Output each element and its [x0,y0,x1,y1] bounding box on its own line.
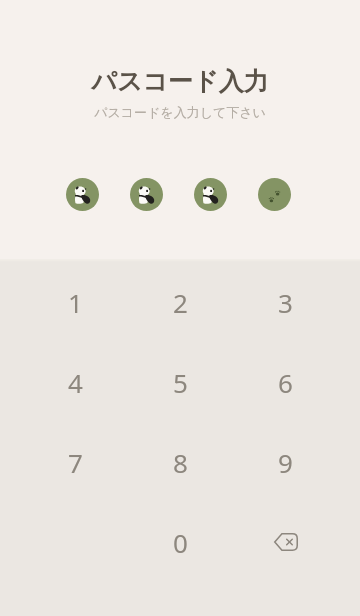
button[interactable]: 5 [128,342,233,422]
staticText: 3 [278,285,293,320]
staticText: 0 [173,525,188,560]
staticText: 4 [68,365,83,400]
button[interactable]: 2 [128,262,233,342]
other: Entered digit [194,178,227,211]
other: Entered digit [130,178,163,211]
button[interactable]: 6 [233,342,338,422]
button[interactable]: 9 [233,422,338,502]
staticText: 8 [173,445,188,480]
other: Entered digit [66,178,99,211]
staticText: パスコードを入力して下さい [94,104,266,120]
staticText: 2 [173,285,188,320]
staticText: 1 [68,285,83,320]
staticText: 6 [278,365,293,400]
button[interactable]: 0 [128,502,233,582]
button[interactable]: 7 [23,422,128,502]
button[interactable]: 1 [23,262,128,342]
staticText: 5 [173,365,188,400]
button[interactable]: 3 [233,262,338,342]
other: Empty digit [258,178,291,211]
staticText: パスコード入力 [91,66,269,97]
button[interactable]: 8 [128,422,233,502]
staticText: 9 [278,445,293,480]
button[interactable]: 4 [23,342,128,422]
button[interactable]: Backspace [233,502,338,582]
staticText: 7 [68,445,83,480]
